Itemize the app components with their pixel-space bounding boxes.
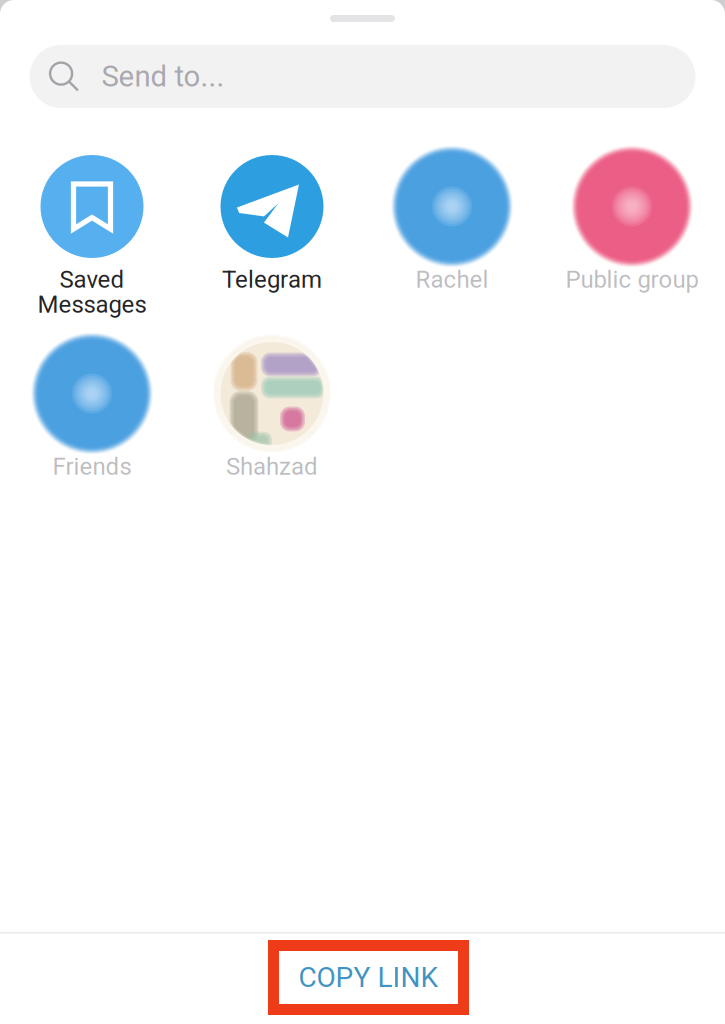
staticText: Telegram [222, 265, 322, 293]
staticText: Rachel [415, 265, 488, 293]
staticText: Send to... [101, 59, 224, 94]
staticText: Public group [565, 265, 698, 293]
button[interactable]: COPY LINK [268, 940, 469, 1015]
staticText: Shahzad [226, 452, 318, 480]
staticText: Friends [52, 452, 131, 480]
button[interactable]: Public group [542, 155, 722, 321]
staticText: COPY LINK [298, 961, 438, 994]
staticText: Messages [37, 290, 146, 318]
button[interactable]: Telegram [182, 155, 362, 321]
staticText: Saved [59, 265, 124, 293]
button[interactable]: Saved [2, 155, 182, 321]
button[interactable]: Shahzad [182, 342, 362, 508]
button[interactable]: Rachel [362, 155, 542, 321]
button[interactable]: Friends [2, 342, 182, 508]
